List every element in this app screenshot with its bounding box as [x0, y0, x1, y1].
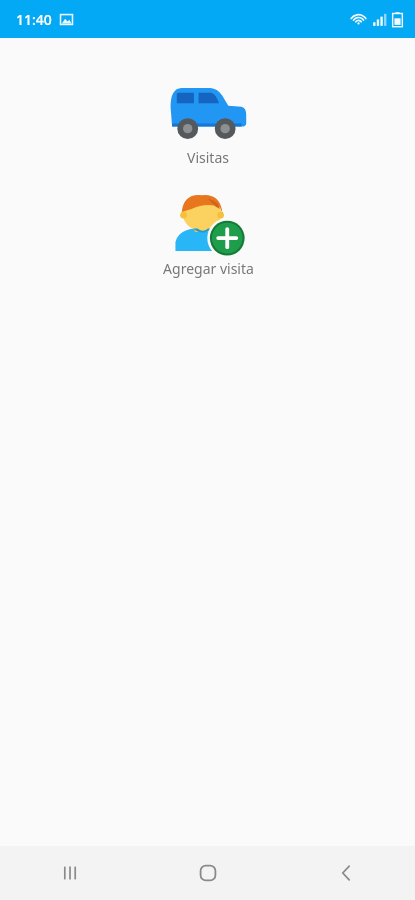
staticText: Agregar visita: [163, 259, 254, 278]
button[interactable]: Recent apps: [0, 846, 139, 900]
button[interactable]: Home: [139, 846, 277, 900]
button[interactable]: Agregar visita: [133, 193, 283, 280]
staticText: 11:40: [16, 10, 52, 29]
staticText: Visitas: [187, 148, 229, 167]
button[interactable]: Visitas: [133, 82, 283, 169]
button[interactable]: Back: [277, 846, 415, 900]
